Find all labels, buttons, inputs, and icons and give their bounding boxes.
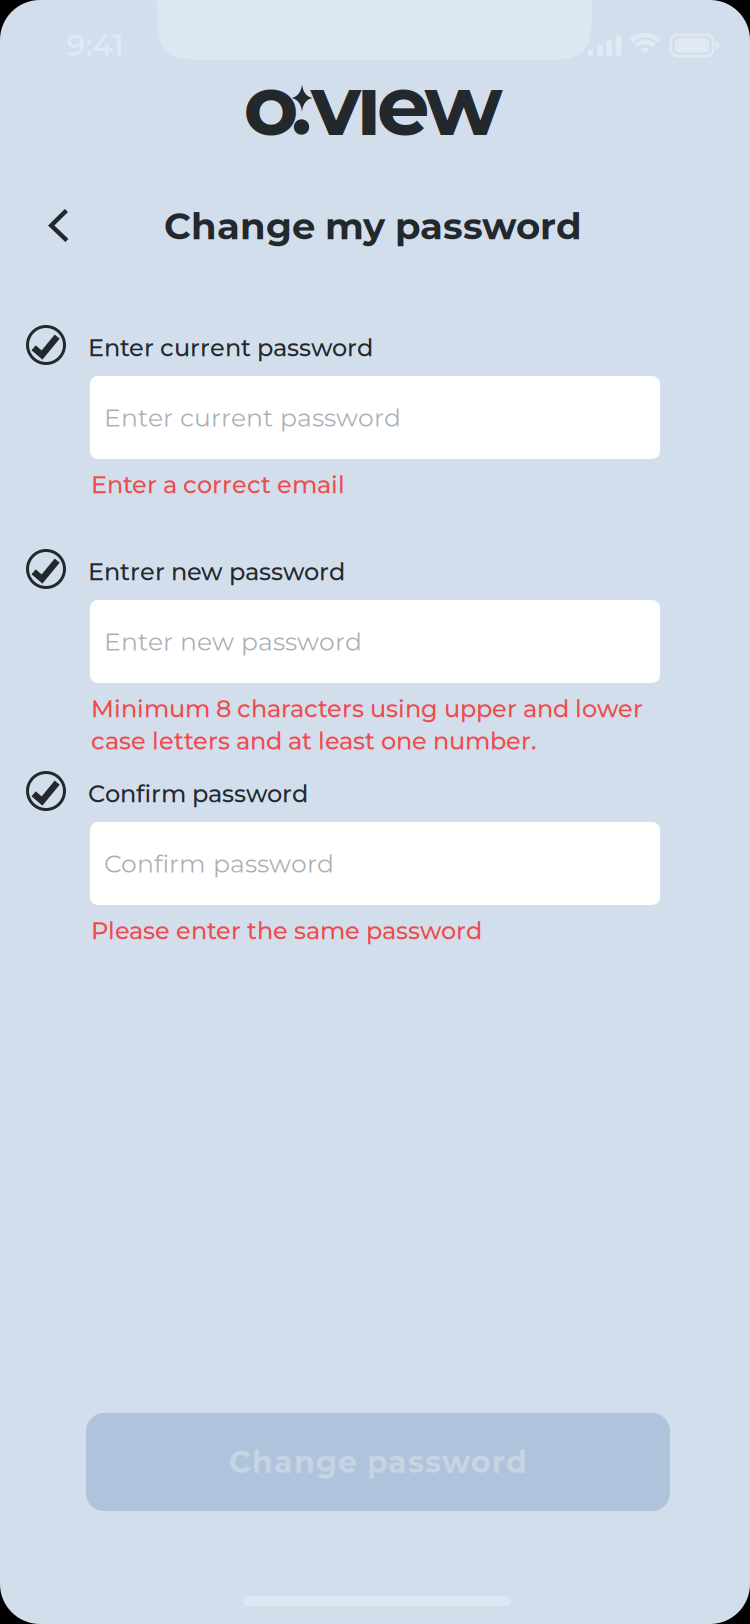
staticText: Enter current password: [104, 402, 401, 433]
button[interactable]: Enter current password: [90, 376, 660, 459]
staticText: Please enter the same password: [91, 916, 482, 945]
staticText: Change password: [229, 1444, 527, 1480]
staticText: o: [243, 54, 298, 156]
staticText: Minimum 8 characters using upper and low…: [91, 694, 643, 755]
staticText: Change my password: [164, 203, 582, 248]
staticText: vıew: [311, 54, 503, 156]
staticText: 9:41: [66, 27, 123, 63]
button[interactable]: Back: [35, 201, 83, 249]
button[interactable]: Change password: [86, 1413, 670, 1511]
button[interactable]: Confirm password: [90, 822, 660, 905]
staticText: Entrer new password: [88, 557, 345, 586]
button[interactable]: Enter new password: [90, 600, 660, 683]
staticText: Enter new password: [104, 626, 362, 657]
staticText: Enter current password: [88, 333, 373, 362]
staticText: Confirm password: [104, 848, 334, 879]
staticText: Confirm password: [88, 779, 308, 808]
staticText: Enter a correct email: [91, 470, 345, 499]
